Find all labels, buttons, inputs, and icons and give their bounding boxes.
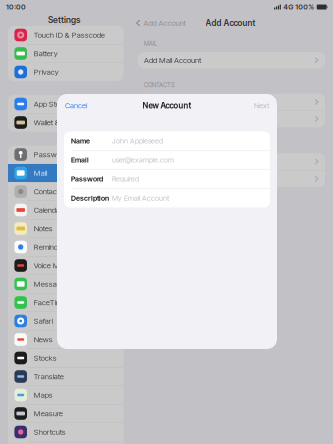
staticText: Required — [112, 175, 139, 183]
staticText: iCloud — [144, 97, 163, 107]
staticText: 4G — [283, 3, 293, 11]
button[interactable]: Notes — [8, 219, 123, 237]
staticText: CONTACTS — [144, 81, 175, 89]
button[interactable]: iCloud — [138, 153, 325, 170]
staticText: Messages — [34, 279, 69, 289]
button[interactable]: Stocks — [8, 349, 123, 367]
button[interactable]: Name — [64, 131, 270, 150]
staticText: Stocks — [34, 353, 57, 363]
staticText: Reminders — [34, 242, 69, 252]
staticText: My Email Account — [112, 194, 169, 202]
button[interactable]: Battery — [8, 44, 123, 62]
staticText: FaceTime — [34, 298, 66, 307]
button[interactable]: Wallet & Apple Pay — [8, 113, 123, 131]
button[interactable]: Calendar — [8, 201, 123, 219]
button[interactable]: iCloud — [138, 94, 325, 110]
button[interactable]: Maps — [8, 386, 123, 404]
button[interactable]: Add Account — [128, 14, 185, 32]
staticText: CALENDARS — [144, 141, 178, 148]
button[interactable]: News — [8, 330, 123, 348]
button[interactable]: Cancel — [57, 94, 87, 117]
staticText: Voice Memos — [34, 261, 78, 270]
staticText: Next — [254, 101, 269, 110]
button[interactable]: Measure — [8, 404, 123, 422]
staticText: 100% — [295, 3, 314, 11]
staticText: Safari — [34, 316, 53, 326]
button[interactable]: Passwords — [8, 145, 123, 163]
button[interactable]: Add Account — [138, 170, 325, 187]
staticText: Password — [71, 175, 103, 183]
button[interactable]: Reminders — [8, 238, 123, 256]
button[interactable]: Privacy — [8, 63, 123, 81]
staticText: Battery — [34, 49, 58, 58]
button[interactable]: Voice Memos — [8, 256, 123, 274]
button[interactable]: Safari — [8, 312, 123, 330]
staticText: Notes — [34, 224, 53, 233]
staticText: Description — [71, 194, 109, 202]
button[interactable]: Messages — [8, 275, 123, 293]
staticText: 10:00 — [6, 3, 26, 11]
staticText: Maps — [34, 390, 53, 400]
staticText: Email — [71, 155, 89, 164]
button[interactable]: Description — [64, 189, 270, 207]
button[interactable]: Next — [254, 94, 277, 117]
staticText: user@example.com — [112, 155, 174, 164]
staticText: Settings — [48, 15, 80, 25]
staticText: Cancel — [65, 101, 87, 110]
button[interactable]: Mail — [8, 164, 123, 182]
staticText: Wallet & Apple Pay — [34, 118, 95, 127]
staticText: Add Account — [205, 18, 255, 28]
button[interactable]: Add Account — [138, 111, 325, 127]
staticText: News — [34, 335, 53, 344]
staticText: Translate — [34, 372, 64, 381]
staticText: New Account — [142, 101, 191, 110]
staticText: Add Account — [143, 18, 185, 28]
button[interactable]: Email — [64, 151, 270, 169]
staticText: Privacy — [34, 67, 59, 77]
staticText: MAIL — [144, 40, 157, 47]
staticText: Name — [71, 136, 90, 145]
button[interactable]: Translate — [8, 367, 123, 385]
staticText: Measure — [34, 409, 63, 418]
staticText: Contacts — [34, 187, 63, 196]
staticText: Mail — [34, 168, 47, 178]
staticText: Calendar — [34, 205, 63, 215]
staticText: Passwords — [34, 150, 71, 159]
staticText: Touch ID & Passcode — [34, 30, 105, 40]
button[interactable]: Contacts — [8, 182, 123, 200]
staticText: Shortcuts — [34, 427, 66, 437]
button[interactable]: Add Mail Account — [138, 52, 325, 69]
staticText: John Appleseed — [112, 136, 163, 145]
button[interactable]: FaceTime — [8, 293, 123, 311]
staticText: App Store — [34, 99, 66, 109]
button[interactable]: Password — [64, 170, 270, 188]
button[interactable]: App Store — [8, 95, 123, 113]
staticText: Add Mail Account — [144, 56, 201, 65]
button[interactable]: Shortcuts — [8, 423, 123, 441]
button[interactable]: Touch ID & Passcode — [8, 26, 123, 44]
staticText: iCloud — [144, 157, 163, 166]
